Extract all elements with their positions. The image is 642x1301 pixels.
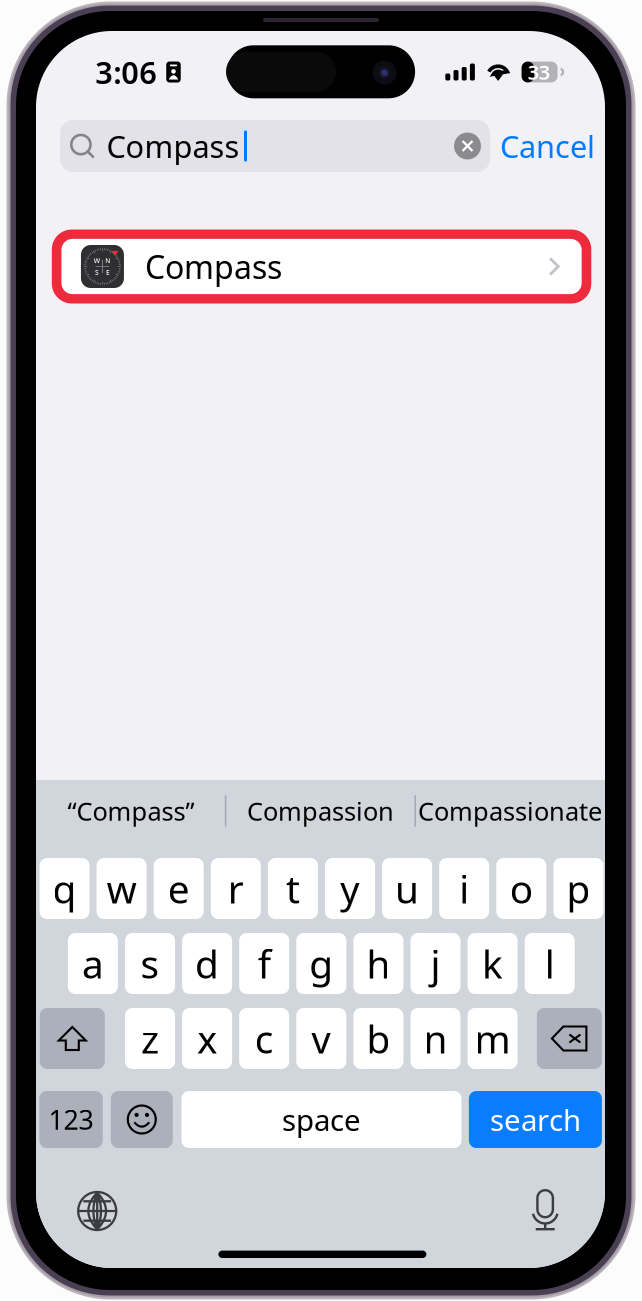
staticText: Compassion [247, 794, 394, 828]
staticText: n [423, 1013, 447, 1064]
staticText: 3:06 [95, 52, 157, 92]
button[interactable]: y [325, 858, 375, 919]
staticText: p [566, 863, 590, 914]
button[interactable]: f [239, 933, 289, 994]
staticText: u [395, 863, 419, 914]
staticText: Cancel [500, 126, 595, 166]
staticText: t [286, 863, 300, 914]
staticText: b [366, 1013, 390, 1064]
staticText: Compass [106, 126, 239, 166]
staticText: x [197, 1013, 217, 1064]
button[interactable]: h [353, 933, 403, 994]
button[interactable]: k [468, 933, 518, 994]
button[interactable]: x [182, 1008, 232, 1069]
staticText: k [482, 938, 503, 989]
staticText: c [255, 1013, 274, 1064]
staticText: q [52, 863, 76, 914]
button[interactable]: q [39, 858, 89, 919]
staticText: W [94, 256, 100, 265]
staticText: a [82, 938, 104, 989]
button[interactable]: N [52, 229, 591, 303]
staticText: y [340, 863, 360, 914]
staticText: space [282, 1100, 361, 1139]
staticText: “Compass” [67, 794, 194, 828]
button[interactable]: Compassionate [415, 780, 605, 842]
staticText: Compassionate [418, 794, 602, 828]
button[interactable]: z [125, 1008, 175, 1069]
button[interactable]: e [154, 858, 204, 919]
staticText: N [105, 256, 110, 265]
staticText: e [168, 863, 190, 914]
button[interactable]: s [125, 933, 175, 994]
button[interactable]: Shift [40, 1008, 105, 1069]
button[interactable]: Emoji [111, 1091, 173, 1148]
button[interactable]: i [439, 858, 489, 919]
staticText: h [366, 938, 390, 989]
staticText: v [311, 1013, 331, 1064]
staticText: d [195, 938, 219, 989]
button[interactable]: o [496, 858, 546, 919]
button[interactable]: m [468, 1008, 518, 1069]
staticText: w [107, 863, 137, 914]
staticText: z [141, 1013, 159, 1064]
staticText: 123 [48, 1102, 93, 1137]
staticText: 33 [528, 59, 550, 85]
staticText: i [459, 863, 469, 914]
button[interactable]: b [353, 1008, 403, 1069]
staticText: o [510, 863, 533, 914]
button[interactable]: n [410, 1008, 460, 1069]
button[interactable]: Clear text [454, 132, 481, 159]
button[interactable]: a [68, 933, 118, 994]
staticText: s [140, 938, 159, 989]
staticText: f [258, 938, 271, 989]
button[interactable]: w [97, 858, 147, 919]
button[interactable]: Dictate [531, 1189, 559, 1231]
staticText: E [106, 268, 110, 277]
button[interactable]: Compass [60, 120, 490, 172]
button[interactable]: p [553, 858, 603, 919]
button[interactable]: v [296, 1008, 346, 1069]
staticText: j [430, 938, 440, 989]
staticText: search [490, 1100, 581, 1139]
button[interactable]: u [382, 858, 432, 919]
button[interactable]: c [239, 1008, 289, 1069]
button[interactable]: Cancel [490, 120, 605, 172]
staticText: l [545, 938, 555, 989]
button[interactable]: t [268, 858, 318, 919]
button[interactable]: space [181, 1091, 461, 1148]
button[interactable]: Delete [537, 1008, 602, 1069]
button[interactable]: l [525, 933, 575, 994]
button[interactable]: Next keyboard [78, 1192, 116, 1230]
button[interactable]: “Compass” [36, 780, 226, 842]
button[interactable]: 123 [39, 1091, 103, 1148]
button[interactable]: j [410, 933, 460, 994]
button[interactable]: Compassion [226, 780, 415, 842]
button[interactable]: d [182, 933, 232, 994]
button[interactable]: r [211, 858, 261, 919]
staticText: m [475, 1013, 511, 1064]
button[interactable]: search [469, 1091, 602, 1148]
staticText: Compass [145, 245, 282, 288]
staticText: r [228, 863, 244, 914]
button[interactable]: g [296, 933, 346, 994]
staticText: g [309, 938, 333, 989]
staticText: S [95, 268, 99, 277]
